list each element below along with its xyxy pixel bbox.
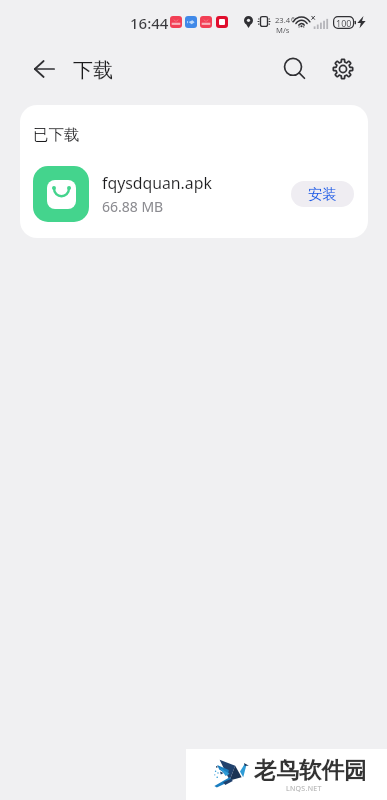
- staticText: 100: [336, 17, 352, 29]
- staticText: 老鸟软件园: [254, 756, 367, 784]
- staticText: M/s: [276, 25, 290, 35]
- staticText: LNQS.NET: [286, 784, 322, 794]
- staticText: 已下载: [33, 125, 80, 145]
- button[interactable]: Settings: [314, 40, 371, 97]
- staticText: 66.88 MB: [102, 197, 164, 216]
- staticText: 16:44: [130, 13, 169, 33]
- staticText: fqysdquan.apk: [102, 172, 212, 194]
- button[interactable]: Back: [16, 41, 72, 97]
- staticText: 23.4: [275, 15, 291, 25]
- button[interactable]: fqysdquan.apk: [20, 159, 368, 229]
- button[interactable]: 安装: [291, 181, 354, 207]
- staticText: 安装: [308, 185, 337, 203]
- button[interactable]: Search: [267, 41, 323, 97]
- staticText: 6: [291, 15, 296, 25]
- staticText: 下载: [73, 58, 113, 83]
